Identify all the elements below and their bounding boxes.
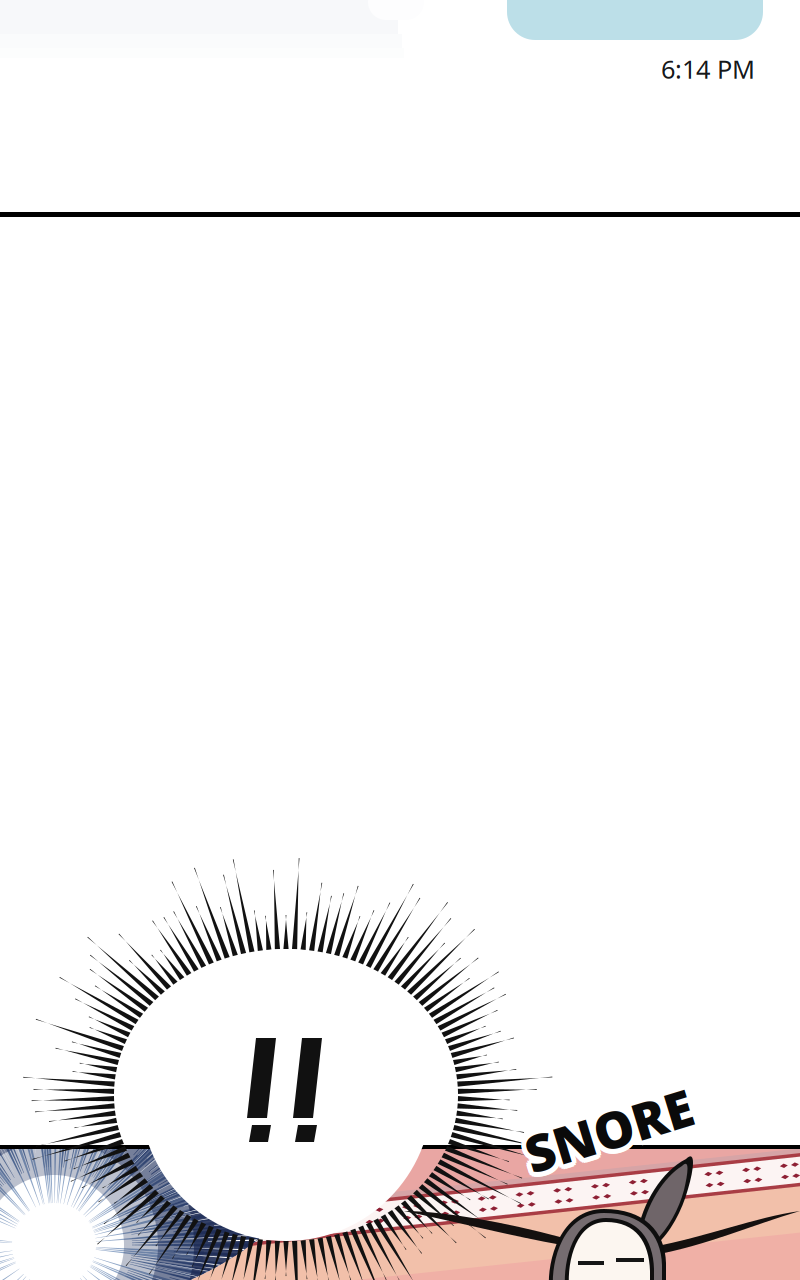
staticText: 6:14 PM [661, 52, 755, 86]
staticText: SNORE [527, 1094, 700, 1161]
staticText: SNORE [527, 1098, 700, 1166]
staticText: SNORE [519, 1100, 692, 1168]
staticText: SNORE [524, 1101, 697, 1168]
staticText: SNORE [527, 1096, 700, 1164]
staticText: SNORE [517, 1096, 690, 1164]
staticText: SNORE [518, 1098, 691, 1166]
staticText: SNORE [522, 1096, 695, 1164]
staticText: SNORE [526, 1092, 699, 1160]
staticText: SNORE [526, 1100, 699, 1168]
staticText: SNORE [521, 1091, 694, 1159]
staticText: SNORE [518, 1094, 691, 1161]
staticText: SNORE [519, 1092, 692, 1160]
staticText: SNORE [524, 1091, 697, 1159]
staticText: SNORE [521, 1101, 694, 1168]
